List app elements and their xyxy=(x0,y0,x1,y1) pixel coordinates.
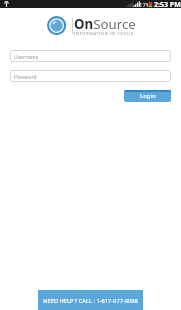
button[interactable]: Login xyxy=(124,90,171,102)
button[interactable]: NEED HELP ? CALL : 1-617-977-9098 xyxy=(38,290,143,310)
staticText: Username xyxy=(14,54,39,61)
button[interactable]: Username xyxy=(10,50,171,62)
staticText: OnSource xyxy=(74,15,136,33)
staticText: Login xyxy=(140,92,156,100)
staticText: Password xyxy=(14,74,37,81)
staticText: NEED HELP ? CALL : 1-617-977-9098 xyxy=(43,297,138,305)
staticText: 2:53 PM xyxy=(154,0,181,8)
button[interactable]: Password xyxy=(10,70,171,82)
staticText: 17% xyxy=(139,1,151,9)
staticText: INFORMATION IN FOCUS xyxy=(74,31,134,36)
